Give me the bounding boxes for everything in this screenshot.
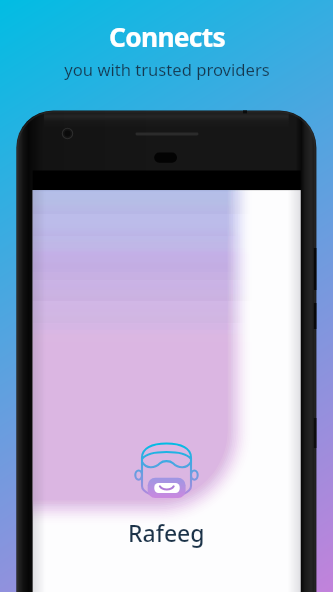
staticText: Rafeeg	[128, 517, 205, 548]
staticText: Connects	[109, 19, 225, 55]
staticText: you with trusted providers	[64, 58, 270, 81]
